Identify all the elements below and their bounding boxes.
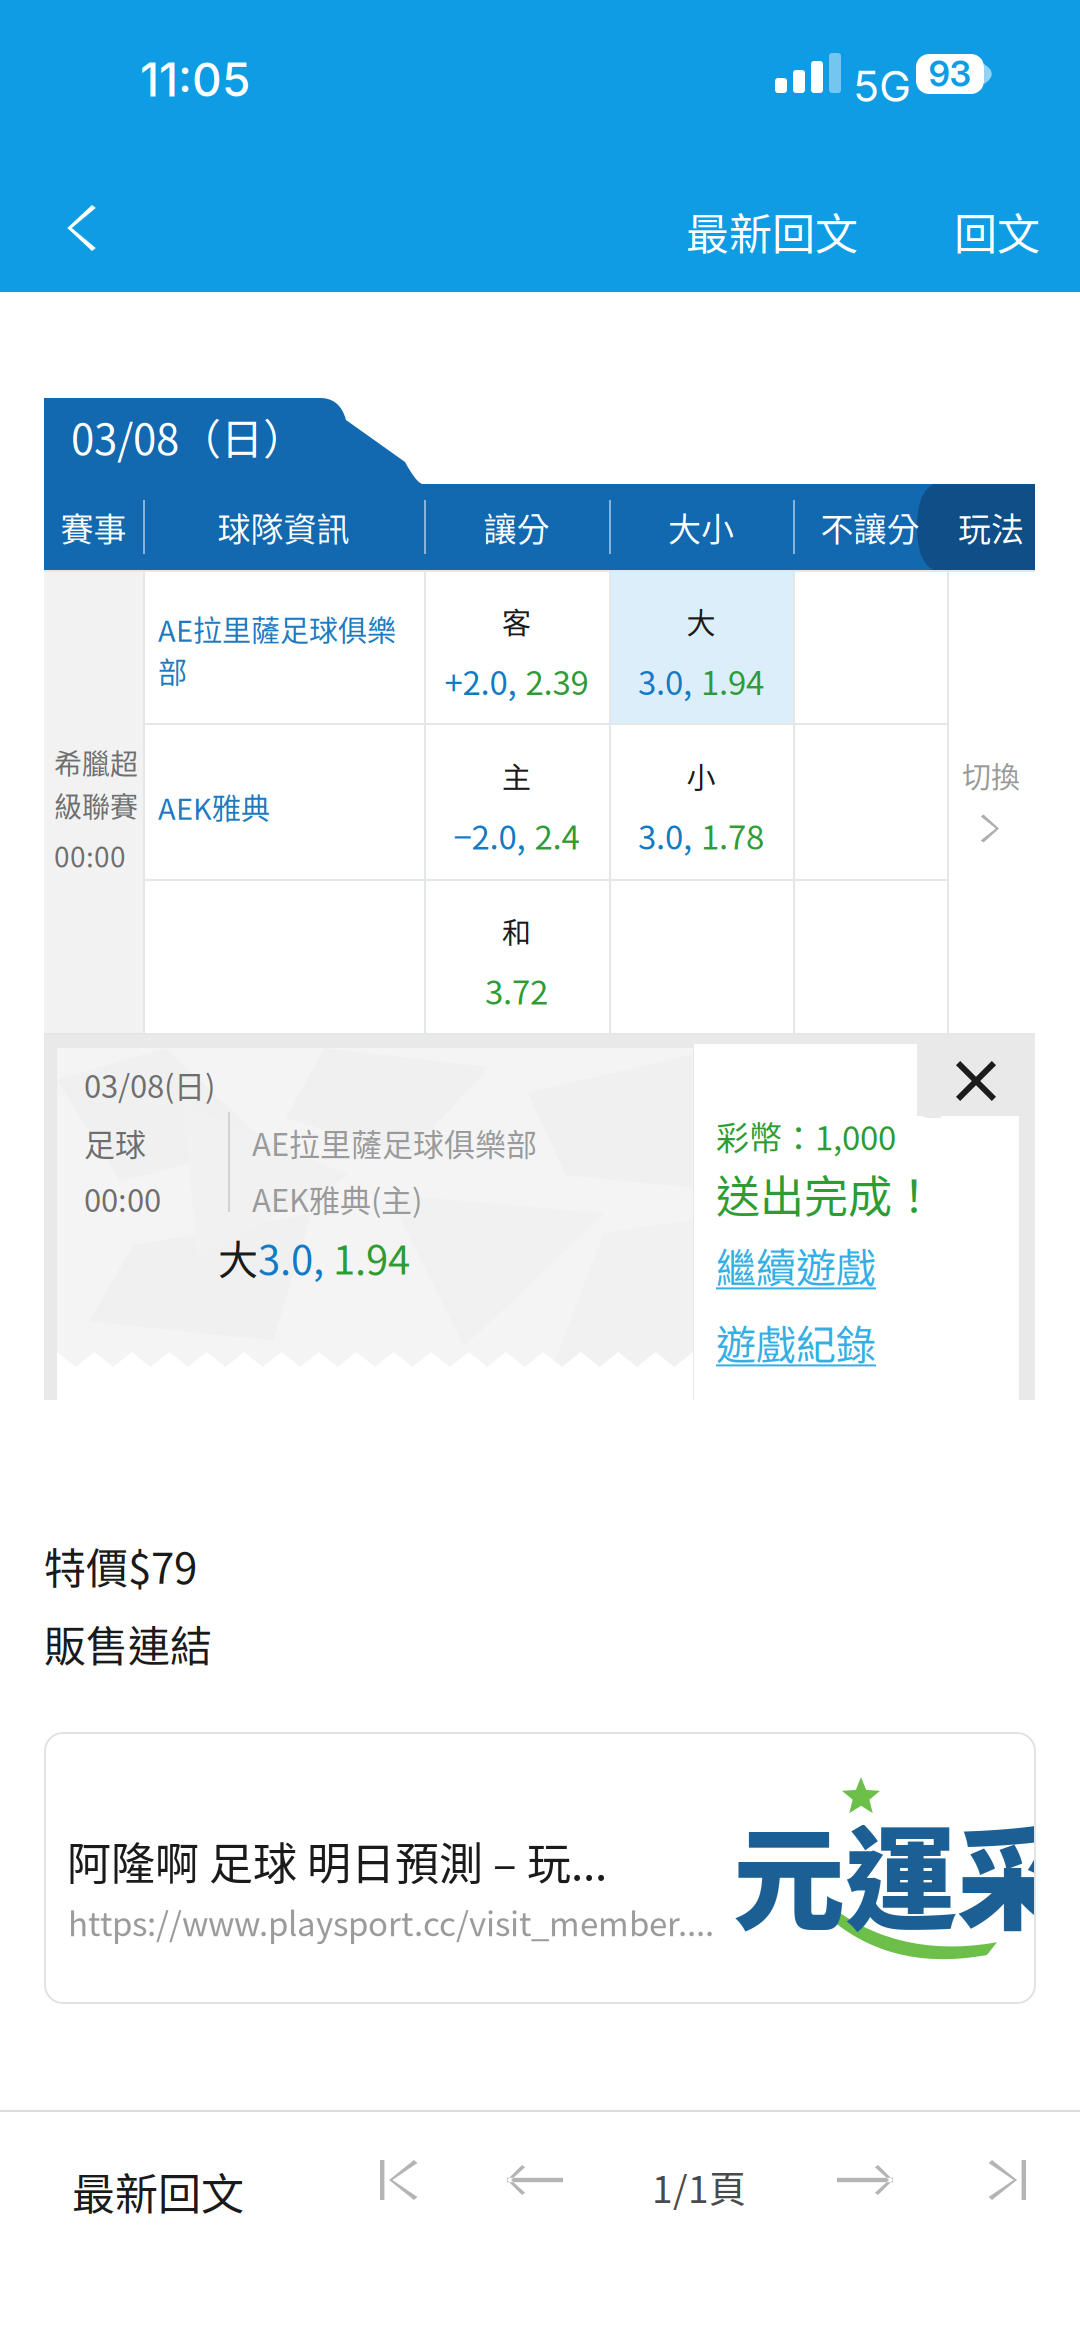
button[interactable]: Previous page	[490, 2140, 580, 2220]
staticText: 03/08(日)	[84, 1062, 215, 1107]
staticText: AE拉里薩足球俱樂	[158, 608, 396, 650]
staticText: 00:00	[54, 835, 126, 875]
staticText: 讓分	[483, 503, 549, 551]
staticText: 彩幣：1,000	[716, 1112, 896, 1160]
staticText: 和	[502, 910, 531, 952]
staticText: 3.0,	[258, 1228, 324, 1286]
staticText: 最新回文	[686, 200, 858, 262]
staticText: 03/08（日）	[71, 406, 305, 467]
staticText: 1.94	[324, 1228, 410, 1286]
staticText: AEK雅典(主)	[252, 1176, 422, 1221]
staticText: 元運采	[733, 1791, 1069, 1953]
staticText: 93	[928, 53, 971, 95]
staticText: 客	[502, 601, 531, 643]
staticText: 小	[686, 755, 715, 797]
button[interactable]: 遊戲紀錄	[716, 1313, 876, 1371]
staticText: −2.0,	[453, 811, 525, 859]
button[interactable]: 最新回文	[58, 2148, 258, 2234]
staticText: 希臘超	[54, 742, 138, 782]
button[interactable]: 小	[609, 729, 793, 885]
staticText: 5G	[853, 60, 911, 112]
staticText: 送出完成！	[716, 1162, 936, 1226]
button[interactable]: 切換	[947, 566, 1035, 1031]
staticText: 繼續遊戲	[716, 1236, 876, 1294]
staticText: AEK雅典	[158, 786, 270, 828]
staticText: 1.94	[701, 657, 764, 704]
staticText: 最新回文	[72, 2160, 244, 2222]
staticText: 玩法	[958, 503, 1024, 551]
staticText: 阿隆啊 足球 明日預測 – 玩...	[67, 1829, 607, 1893]
button[interactable]: Close	[917, 1046, 1035, 1116]
staticText: 不讓分	[820, 503, 919, 551]
staticText: +2.0,	[444, 657, 516, 704]
button[interactable]: Next page	[820, 2140, 910, 2220]
staticText: 球隊資訊	[217, 503, 349, 551]
staticText: 級聯賽	[54, 785, 138, 825]
staticText: 1/1頁	[652, 2160, 746, 2214]
staticText: 切換	[962, 754, 1020, 796]
staticText: 3.0,	[638, 657, 692, 704]
staticText: 3.0,	[638, 811, 692, 859]
staticText: 大小	[668, 503, 734, 551]
staticText: 2.4	[534, 811, 579, 859]
staticText: https://www.playsport.cc/visit_member...…	[68, 1898, 714, 1946]
button[interactable]: 主	[424, 729, 609, 885]
staticText: 賽事	[60, 503, 126, 551]
staticText: 足球	[84, 1120, 146, 1165]
button[interactable]: Last page	[968, 2140, 1048, 2220]
button[interactable]: 大	[609, 576, 793, 729]
staticText: 販售連結	[44, 1613, 212, 1674]
button[interactable]: 和	[424, 885, 609, 1039]
staticText: 特價$79	[44, 1535, 197, 1596]
button[interactable]: 最新回文	[672, 188, 872, 274]
button[interactable]: Back	[30, 182, 130, 274]
button[interactable]: 回文	[940, 188, 1054, 274]
staticText: 1.78	[701, 811, 764, 859]
staticText: 3.72	[485, 966, 548, 1014]
staticText: 11:05	[140, 52, 250, 108]
staticText: AE拉里薩足球俱樂部	[252, 1120, 537, 1165]
button[interactable]: 繼續遊戲	[716, 1236, 876, 1294]
staticText: 部	[158, 650, 187, 692]
staticText: 主	[502, 755, 531, 797]
staticText: 大	[218, 1228, 258, 1286]
staticText: 遊戲紀錄	[716, 1313, 876, 1371]
staticText: 大	[686, 601, 715, 643]
staticText: 2.39	[525, 657, 588, 704]
staticText: 回文	[954, 200, 1040, 262]
button[interactable]: First page	[358, 2140, 438, 2220]
button[interactable]: 客	[424, 576, 609, 729]
button[interactable]: 元運采	[45, 1733, 1035, 2003]
staticText: 00:00	[84, 1176, 161, 1221]
